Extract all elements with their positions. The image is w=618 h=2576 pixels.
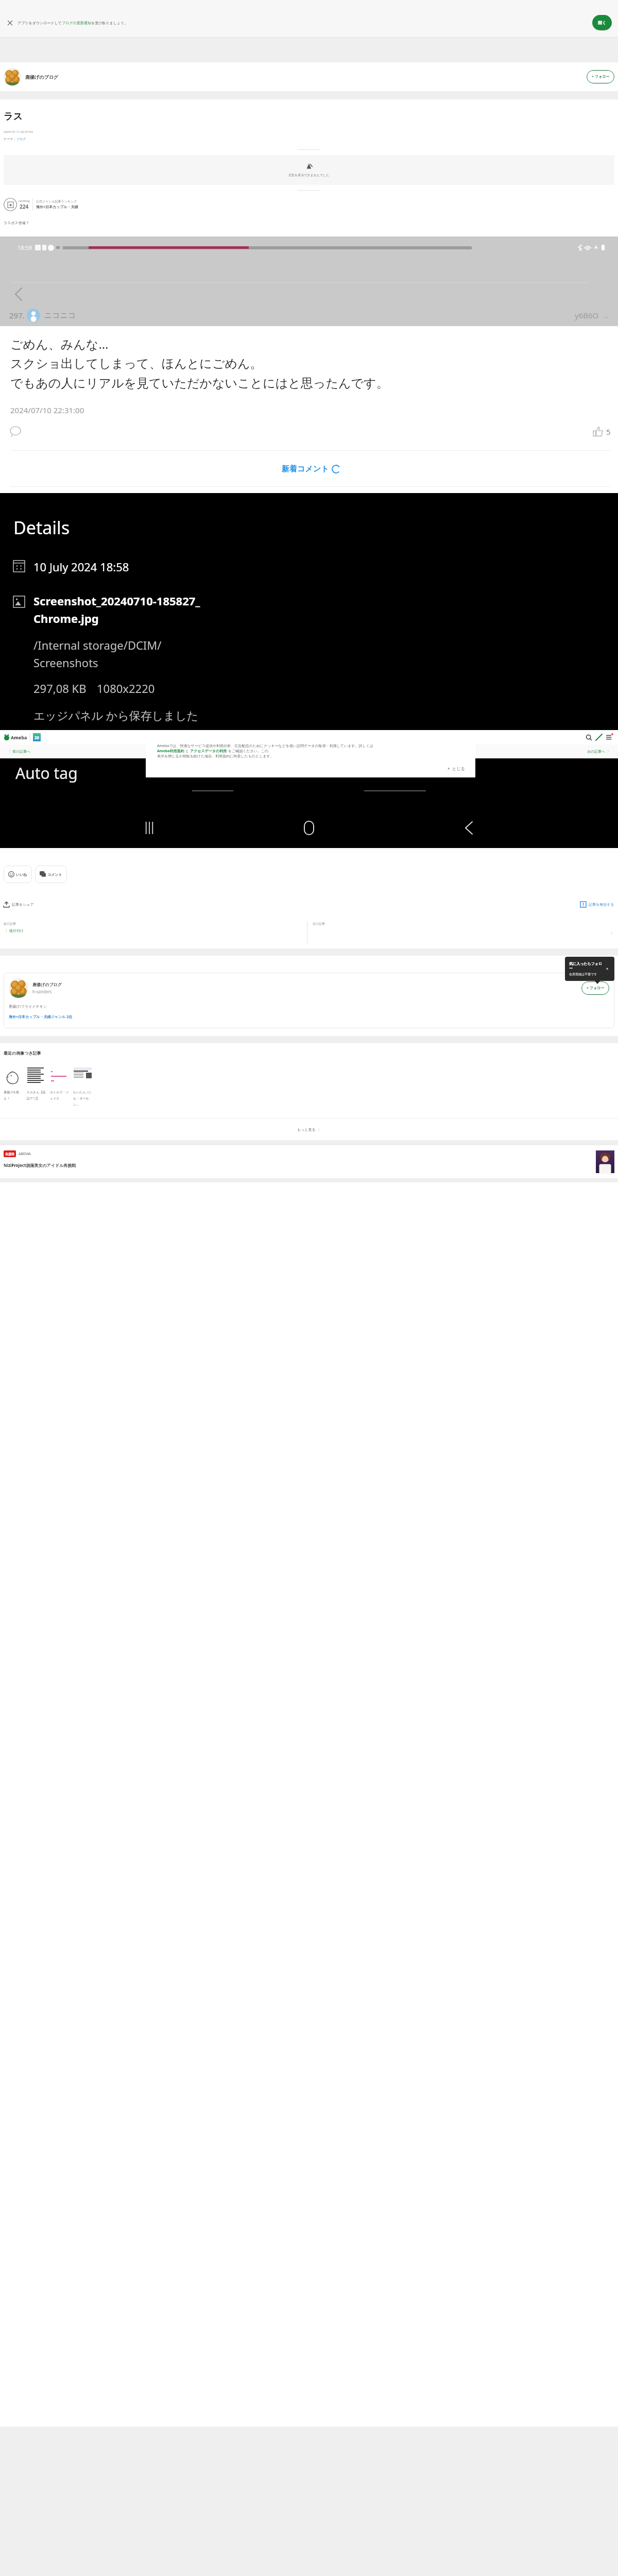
staticText: 開く	[598, 20, 607, 25]
staticText: 前の記事	[4, 922, 16, 926]
staticText: ranking	[19, 199, 30, 203]
staticText: 前の記事へ	[12, 749, 31, 754]
staticText: と	[184, 749, 190, 754]
button[interactable]: いいね	[4, 866, 32, 883]
staticText: ちいたん☆にも・ヨーカン…	[73, 1090, 92, 1107]
button[interactable]: 記事を報告する	[580, 902, 614, 907]
button[interactable]: 次の記事へ	[587, 749, 611, 754]
staticText: NiziProject脱落美女のアイドル再挑戦	[4, 1162, 76, 1168]
staticText: とじる	[452, 766, 465, 771]
staticText: Screenshot_20240710-185827_ Chrome.jpg	[33, 593, 200, 626]
staticText: 次の記事へ	[587, 749, 606, 754]
button[interactable]: Write	[594, 732, 604, 742]
staticText: アクセスデータの利用	[190, 749, 227, 753]
button[interactable]: 生放送	[4, 1150, 614, 1173]
staticText: 〉	[607, 749, 611, 754]
staticText: 唐揚げ/フライドチキン	[9, 1004, 47, 1009]
staticText: 気に入ったらフォロー	[569, 961, 604, 971]
staticText: をご確認ください。この	[227, 749, 269, 754]
staticText: 海外×日本カップル・夫婦ジャンル 2位	[9, 1014, 73, 1020]
staticText: Amebaでは、快適なサービス提供や利用分析、広告配信のためにクッキーなどを使い…	[157, 743, 465, 749]
staticText: ブログの更新通知	[62, 21, 91, 25]
staticText: ABEMA	[19, 1151, 31, 1157]
staticText: Auto tag	[15, 762, 78, 784]
staticText: アプリをダウンロードして	[18, 21, 62, 25]
button[interactable]: Home	[299, 818, 319, 838]
staticText: 297,08 KB	[33, 681, 87, 696]
staticText: 2024-07-11 02:37:54	[4, 130, 33, 134]
staticText: 表示を閉じるか閲覧を続けた場合、利用規約に同意したものとします。	[157, 754, 274, 758]
staticText: 〈	[7, 749, 11, 754]
staticText: 5	[606, 427, 611, 437]
staticText: 20	[35, 735, 40, 740]
button[interactable]: ちいたん☆にも・ヨーカン…	[73, 1067, 92, 1107]
staticText: 224	[20, 203, 29, 210]
staticText: ×	[606, 967, 609, 972]
staticText: 生放送	[5, 1152, 14, 1156]
staticText: 唐揚げを救え！	[4, 1090, 23, 1100]
staticText: 〉	[611, 930, 614, 935]
staticText: 唐揚げのブログ	[25, 74, 587, 80]
staticText: もっと見る	[297, 1127, 316, 1132]
staticText: ラスボス登場？	[4, 221, 29, 225]
staticText: 最近の画像つき記事	[4, 1050, 41, 1056]
staticText: ブログ	[16, 137, 26, 141]
staticText: 〉	[318, 1127, 321, 1132]
staticText: 10 July 2024 18:58	[33, 559, 129, 574]
staticText: 1080x2220	[97, 681, 155, 696]
staticText: ニコニコ	[44, 311, 575, 320]
button[interactable]: Search	[583, 732, 594, 742]
staticText: 18:59	[18, 244, 32, 251]
staticText: を受け取りましょう。	[91, 21, 128, 25]
staticText: カトルズ・ジュイエ	[50, 1090, 69, 1100]
staticText: 記事をシェア	[12, 902, 34, 907]
staticText: 会員登録は不要です	[569, 972, 597, 976]
button[interactable]: 〈	[7, 749, 31, 754]
staticText: + フォロー	[592, 74, 610, 79]
staticText: 後片付け	[9, 928, 24, 933]
button[interactable]: 記事をシェア	[4, 902, 34, 907]
button[interactable]: 唐揚げを救え！	[4, 1067, 23, 1100]
button[interactable]: コメント	[35, 866, 67, 883]
button[interactable]: 〈	[4, 928, 24, 933]
staticText: エッジパネル から保存しました	[33, 707, 198, 723]
staticText: 海外×日本カップル・夫婦	[36, 205, 78, 210]
button[interactable]: 開く	[592, 15, 612, 30]
staticText: …	[603, 311, 609, 320]
staticText: エルさん【追記アリ】	[27, 1090, 46, 1100]
button[interactable]: Menu	[604, 732, 614, 742]
staticText: 297.	[9, 310, 25, 320]
staticText: ごめん、みんな… スクショ出してしまって、ほんとにごめん。 でもあの人にリアルを…	[10, 335, 389, 392]
button[interactable]: Recents	[139, 818, 160, 838]
staticText: 公式ジャンル記事ランキング	[36, 199, 77, 204]
button[interactable]: + フォロー	[587, 70, 614, 83]
button[interactable]: もっと見る	[0, 1118, 618, 1140]
button[interactable]: Close	[3, 16, 16, 29]
button[interactable]: + フォロー	[581, 981, 609, 995]
staticText: いいね	[16, 872, 27, 877]
staticText: /Internal storage/DCIM/ Screenshots	[33, 637, 162, 670]
staticText: + フォロー	[587, 986, 605, 991]
staticText: h-sanders	[32, 989, 52, 994]
button[interactable]: Back	[458, 818, 479, 838]
staticText: 〈	[4, 928, 7, 933]
staticText: Details	[13, 516, 70, 539]
button[interactable]: 新着コメント	[10, 464, 611, 474]
button[interactable]: カトルズ・ジュイエ	[50, 1067, 69, 1100]
staticText: Ameba利用規約	[157, 749, 184, 754]
button[interactable]: ×	[157, 766, 465, 771]
staticText: 唐揚げのブログ	[32, 982, 62, 987]
button[interactable]: Close tooltip	[604, 966, 610, 972]
staticText: Ameba	[11, 734, 27, 740]
staticText: 新着コメント	[282, 464, 329, 474]
staticText: ×	[448, 766, 450, 771]
staticText: コメント	[47, 872, 62, 877]
staticText: 次の記事	[313, 922, 325, 926]
button[interactable]: エルさん【追記アリ】	[27, 1067, 46, 1100]
staticText: テーマ：	[4, 137, 16, 141]
staticText: ラス	[4, 111, 23, 123]
staticText: 記事を報告する	[589, 902, 614, 907]
staticText: y6B6O	[575, 310, 599, 320]
staticText: 広告を表示できませんでした	[288, 173, 330, 177]
staticText: 2024/07/10 22:31:00	[10, 405, 84, 415]
